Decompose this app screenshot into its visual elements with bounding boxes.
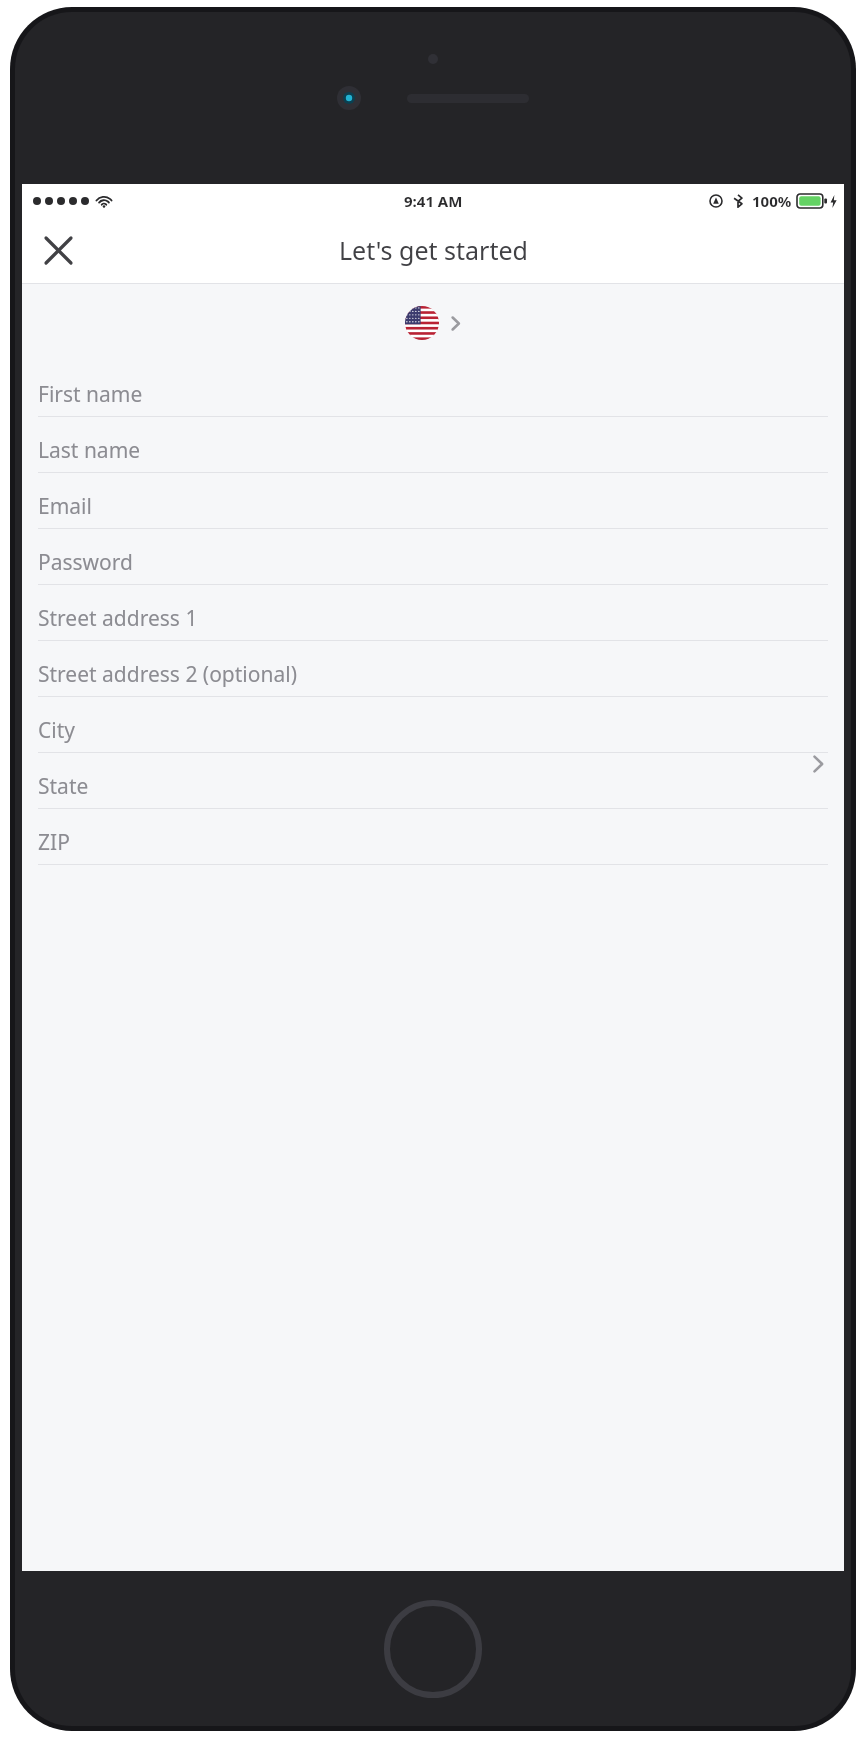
- staticText: Street address 2 (optional): [38, 660, 297, 689]
- staticText: Email: [38, 492, 92, 521]
- staticText: ZIP: [38, 828, 70, 857]
- button[interactable]: City: [22, 697, 844, 753]
- button[interactable]: Last name: [22, 417, 844, 473]
- staticText: Password: [38, 548, 133, 577]
- button[interactable]: Street address 1: [22, 585, 844, 641]
- staticText: 9:41 AM: [404, 191, 463, 211]
- button[interactable]: First name: [22, 361, 844, 417]
- button[interactable]: Select country: [397, 300, 470, 346]
- staticText: Last name: [38, 436, 141, 465]
- staticText: State: [38, 772, 89, 801]
- staticText: 100%: [752, 191, 792, 211]
- button[interactable]: ZIP: [22, 809, 844, 865]
- button[interactable]: Password: [22, 529, 844, 585]
- button[interactable]: Street address 2 (optional): [22, 641, 844, 697]
- staticText: Let's get started: [339, 233, 528, 267]
- button[interactable]: State: [22, 753, 844, 809]
- button[interactable]: Email: [22, 473, 844, 529]
- button[interactable]: Close: [32, 224, 84, 276]
- staticText: City: [38, 716, 75, 745]
- staticText: First name: [38, 380, 143, 409]
- staticText: Street address 1: [38, 604, 198, 633]
